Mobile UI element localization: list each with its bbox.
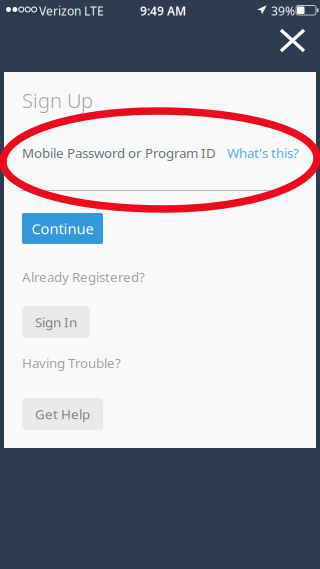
button[interactable]: Close bbox=[271, 20, 316, 61]
staticText: Already Registered? bbox=[22, 268, 145, 286]
button[interactable]: What's this? bbox=[216, 142, 299, 164]
staticText: Continue bbox=[31, 219, 93, 238]
staticText: Verizon bbox=[39, 3, 81, 19]
staticText: LTE bbox=[84, 3, 104, 19]
staticText: Sign In bbox=[35, 313, 77, 331]
staticText: 9:49 AM bbox=[140, 3, 186, 19]
button[interactable]: Get Help bbox=[22, 398, 103, 430]
staticText: Sign Up bbox=[22, 87, 93, 114]
button[interactable]: Sign In bbox=[22, 306, 90, 338]
staticText: Get Help bbox=[35, 405, 90, 423]
staticText: Mobile Password or Program ID bbox=[22, 144, 216, 162]
button[interactable]: Continue bbox=[22, 213, 103, 244]
staticText: What's this? bbox=[227, 144, 299, 162]
staticText: 39% bbox=[271, 3, 295, 19]
staticText: Having Trouble? bbox=[22, 354, 121, 372]
